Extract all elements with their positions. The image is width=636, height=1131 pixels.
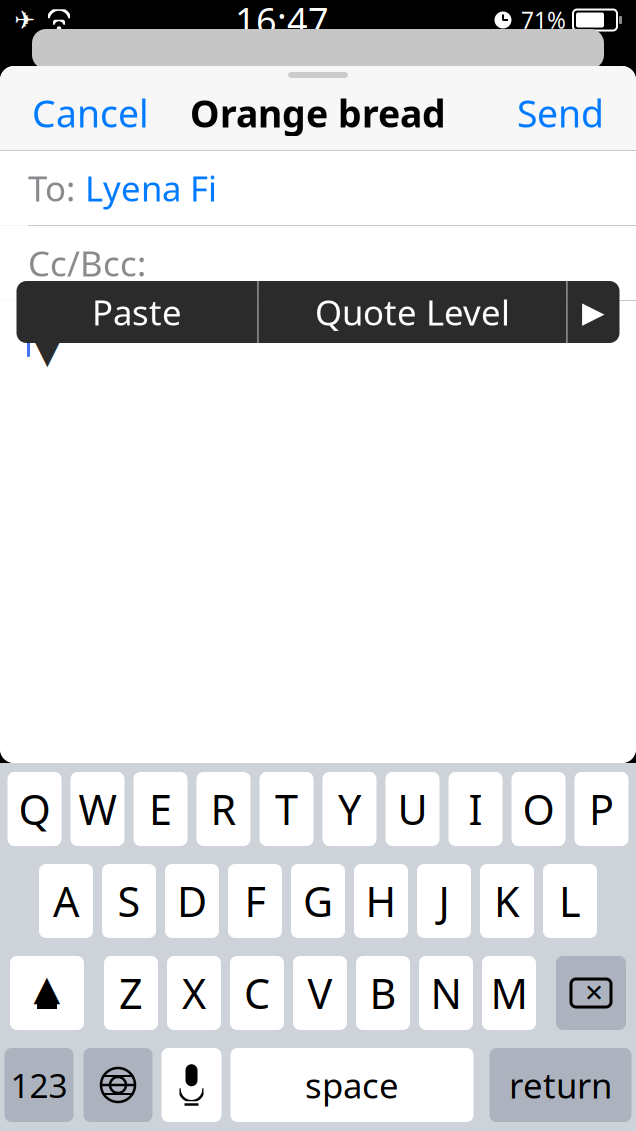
staticText: E (149, 782, 172, 836)
button[interactable]: U (385, 772, 439, 846)
button[interactable]: Quote Level (258, 281, 566, 343)
button[interactable]: G (291, 864, 345, 938)
staticText: 71% (521, 5, 566, 35)
staticText: G (303, 874, 333, 928)
button[interactable]: E (133, 772, 187, 846)
staticText: return (509, 1062, 612, 1108)
staticText: D (177, 874, 207, 928)
staticText: Lyena Fi (85, 165, 217, 211)
button[interactable]: 123 (4, 1048, 73, 1122)
button[interactable]: More (567, 281, 619, 343)
staticText: Send (517, 88, 604, 138)
button[interactable]: H (354, 864, 408, 938)
button[interactable]: Next keyboard (83, 1048, 152, 1122)
staticText: Cc/Bcc: (28, 240, 146, 286)
button[interactable]: I (448, 772, 502, 846)
staticText: ▼ (34, 331, 61, 371)
staticText: R (210, 782, 236, 836)
button[interactable]: Send (503, 80, 618, 146)
staticText: I (468, 782, 482, 836)
staticText: A (53, 874, 79, 928)
button[interactable]: S (102, 864, 156, 938)
staticText: Z (119, 966, 143, 1020)
button[interactable]: Dictate (161, 1048, 221, 1122)
button[interactable]: Cancel (18, 80, 163, 146)
button[interactable]: T (259, 772, 313, 846)
button[interactable]: C (230, 956, 284, 1030)
button[interactable]: L (543, 864, 597, 938)
button[interactable]: Shift (10, 956, 84, 1030)
button[interactable]: K (480, 864, 534, 938)
staticText: O (522, 782, 554, 836)
staticText: L (559, 874, 581, 928)
button[interactable]: B (356, 956, 410, 1030)
staticText: W (78, 782, 116, 836)
staticText: space (305, 1062, 399, 1108)
staticText: Cancel (32, 88, 149, 138)
staticText: V (307, 966, 332, 1020)
button[interactable]: P (574, 772, 628, 846)
button[interactable]: X (167, 956, 221, 1030)
staticText: N (430, 966, 461, 1020)
button[interactable]: N (419, 956, 473, 1030)
staticText: P (589, 782, 614, 836)
button[interactable]: R (196, 772, 250, 846)
button[interactable]: Delete (556, 956, 626, 1030)
button[interactable]: Cc/Bcc: (0, 226, 636, 300)
staticText: U (397, 782, 427, 836)
button[interactable]: M (482, 956, 536, 1030)
staticText: Q (18, 782, 50, 836)
button[interactable]: J (417, 864, 471, 938)
button[interactable]: Z (104, 956, 158, 1030)
button[interactable]: W (70, 772, 124, 846)
staticText: 123 (10, 1063, 67, 1107)
button[interactable]: To: (0, 151, 636, 225)
button[interactable]: return (489, 1048, 631, 1122)
staticText: K (494, 874, 520, 928)
staticText: Y (338, 782, 361, 836)
staticText: J (438, 874, 449, 928)
staticText: C (244, 966, 270, 1020)
staticText: F (244, 874, 265, 928)
staticText: ✕ (584, 979, 604, 1007)
staticText: H (365, 874, 396, 928)
staticText: 16:47 (235, 0, 329, 44)
button[interactable]: D (165, 864, 219, 938)
staticText: ✈ (14, 6, 35, 34)
staticText: T (275, 782, 298, 836)
button[interactable]: A (39, 864, 93, 938)
staticText: ▲ (33, 968, 60, 1008)
staticText: To: (28, 165, 75, 211)
button[interactable]: O (511, 772, 565, 846)
staticText: X (182, 966, 206, 1020)
staticText: M (490, 966, 527, 1020)
button[interactable]: V (293, 956, 347, 1030)
staticText: Orange bread (190, 88, 446, 138)
button[interactable]: Q (7, 772, 61, 846)
button[interactable]: F (228, 864, 282, 938)
staticText: Paste (92, 289, 182, 335)
staticText: ▶ (582, 295, 605, 329)
button[interactable]: Paste (16, 281, 257, 343)
button[interactable]: space (230, 1048, 473, 1122)
staticText: Quote Level (315, 289, 510, 335)
staticText: B (369, 966, 396, 1020)
button[interactable]: Y (322, 772, 376, 846)
staticText: S (117, 874, 140, 928)
